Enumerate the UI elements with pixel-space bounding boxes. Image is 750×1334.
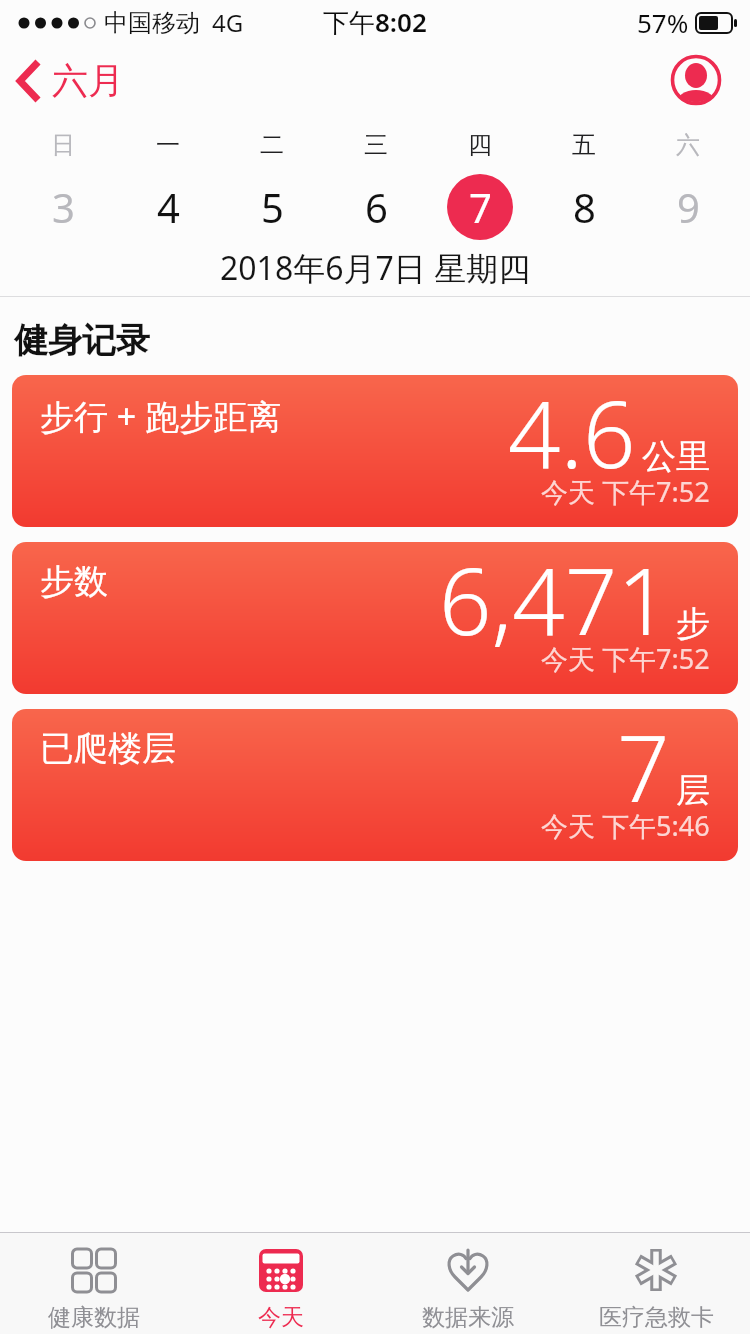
button[interactable]: 5	[239, 174, 305, 240]
staticText: 今天 下午7:52	[541, 640, 710, 677]
staticText: 4.6	[508, 375, 636, 495]
staticText: 6,471	[439, 542, 670, 662]
staticText: 日	[51, 130, 75, 160]
button[interactable]: 今天	[187, 1233, 374, 1334]
staticText: 步行 + 跑步距离	[40, 393, 282, 439]
staticText: 4G	[212, 6, 244, 39]
staticText: 六月	[52, 58, 124, 103]
button[interactable]: 8	[551, 174, 617, 240]
staticText: 中国移动	[104, 8, 200, 38]
staticText: 今天	[258, 1303, 304, 1332]
staticText: 层	[676, 769, 710, 812]
button[interactable]: 4	[135, 174, 201, 240]
button[interactable]: 步行 + 跑步距离	[12, 375, 738, 527]
staticText: 已爬楼层	[40, 727, 176, 770]
staticText: 下午8:02	[323, 4, 427, 40]
staticText: 57%	[637, 5, 689, 40]
staticText: 7	[617, 709, 670, 829]
staticText: 今天 下午7:52	[541, 473, 710, 510]
button[interactable]: 9	[655, 174, 721, 240]
button[interactable]	[670, 54, 722, 106]
staticText: 一	[156, 130, 180, 160]
button[interactable]: 健康数据	[0, 1233, 187, 1334]
staticText: 9	[677, 180, 700, 234]
staticText: 三	[364, 130, 388, 160]
staticText: 健身记录	[14, 319, 150, 362]
button[interactable]: 六月	[16, 58, 124, 103]
button[interactable]: 医疗急救卡	[562, 1233, 750, 1334]
staticText: 健康数据	[48, 1303, 140, 1332]
staticText: 8	[573, 180, 596, 234]
button[interactable]: 已爬楼层	[12, 709, 738, 861]
staticText: 3	[52, 180, 75, 234]
button[interactable]: 7	[447, 174, 513, 240]
staticText: 步数	[40, 560, 108, 603]
staticText: 7	[469, 180, 492, 234]
staticText: 六	[676, 130, 700, 160]
staticText: 四	[468, 130, 492, 160]
staticText: 2018年6月7日 星期四	[220, 246, 531, 290]
staticText: 二	[260, 130, 284, 160]
staticText: 数据来源	[422, 1303, 514, 1332]
staticText: 4	[157, 180, 180, 234]
staticText: 步	[676, 602, 710, 645]
staticText: 6	[365, 180, 388, 234]
button[interactable]: 6	[343, 174, 409, 240]
button[interactable]: 数据来源	[374, 1233, 562, 1334]
staticText: 公里	[642, 435, 710, 478]
button[interactable]: 步数	[12, 542, 738, 694]
staticText: 五	[572, 130, 596, 160]
staticText: 今天 下午5:46	[541, 807, 710, 844]
staticText: 5	[261, 180, 284, 234]
staticText: 医疗急救卡	[599, 1303, 714, 1332]
button[interactable]: 3	[30, 174, 96, 240]
